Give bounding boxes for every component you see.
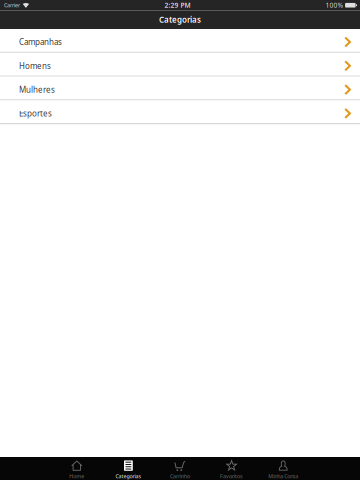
staticText: Mulheres xyxy=(19,84,55,95)
button[interactable]: Carrinho xyxy=(154,457,206,480)
staticText: Homens xyxy=(19,60,51,71)
staticText: Minha Conta xyxy=(268,473,298,480)
staticText: Carrinho xyxy=(170,473,190,480)
button[interactable]: Homens xyxy=(0,53,360,77)
staticText: Home xyxy=(69,473,84,480)
button[interactable]: Categorias xyxy=(103,457,154,480)
button[interactable]: Minha Conta xyxy=(257,457,309,480)
staticText: Esportes xyxy=(19,108,52,119)
staticText: 100% xyxy=(325,1,343,10)
staticText: Categorias xyxy=(159,14,201,25)
staticText: 2:29 PM xyxy=(164,1,190,10)
button[interactable]: Campanhas xyxy=(0,29,360,53)
button[interactable]: Mulheres xyxy=(0,77,360,100)
staticText: Carrier xyxy=(4,2,20,9)
staticText: Favoritos xyxy=(220,473,243,480)
staticText: Categorias xyxy=(115,473,141,480)
button[interactable]: Esportes xyxy=(0,100,360,124)
button[interactable]: Favoritos xyxy=(206,457,257,480)
staticText: Campanhas xyxy=(19,37,62,47)
button[interactable]: Home xyxy=(51,457,103,480)
